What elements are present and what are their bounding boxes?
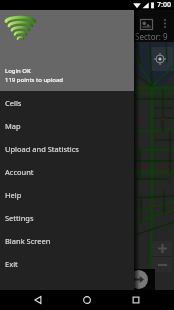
button[interactable]: Zoom out <box>152 257 172 272</box>
button[interactable]: Map <box>0 114 134 137</box>
button[interactable]: Cells <box>0 91 134 114</box>
staticText: Login OK <box>5 67 31 75</box>
staticText: 119 points to upload <box>5 76 64 84</box>
button[interactable]: Upload data <box>129 270 148 289</box>
button[interactable]: Settings <box>0 206 134 229</box>
staticText: Help <box>5 190 22 200</box>
staticText: 7:00 <box>157 0 171 10</box>
staticText: Settings <box>5 213 34 223</box>
staticText: Blank Screen <box>5 236 51 246</box>
staticText: Sector: 9 <box>135 31 168 42</box>
button[interactable]: Blank Screen <box>0 229 134 252</box>
button[interactable]: Home <box>76 290 98 310</box>
button[interactable]: Back <box>27 290 49 310</box>
button[interactable]: Recent apps <box>125 290 147 310</box>
button[interactable]: Exit <box>0 252 134 275</box>
staticText: Cells <box>5 98 22 108</box>
staticText: Account <box>5 167 34 177</box>
button[interactable]: Help <box>0 183 134 206</box>
button[interactable]: Account <box>0 160 134 183</box>
button[interactable]: Upload and Statistics <box>0 137 134 160</box>
staticText: Upload and Statistics <box>5 144 79 154</box>
button[interactable]: Map type <box>136 14 156 34</box>
staticText: Exit <box>5 259 18 269</box>
staticText: Map <box>5 121 21 131</box>
button[interactable]: More options <box>158 14 172 34</box>
button[interactable]: Zoom in <box>152 241 172 256</box>
